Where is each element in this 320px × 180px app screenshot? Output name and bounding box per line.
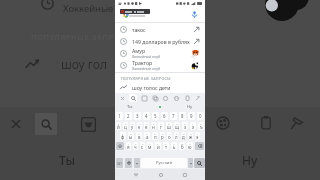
button[interactable]: 9 — [188, 112, 195, 120]
button[interactable]: 4 — [143, 112, 150, 120]
button[interactable]: 8 — [179, 112, 186, 120]
button[interactable]: Keyboard tool 3 — [162, 95, 169, 102]
button[interactable]: 6 — [160, 132, 165, 140]
button[interactable]: Ну — [175, 103, 205, 111]
button[interactable]: 8 — [174, 132, 179, 140]
button[interactable]: Stickers — [212, 112, 234, 134]
button[interactable]: 8 — [166, 122, 172, 130]
button[interactable]: Search — [129, 94, 137, 102]
staticText: Хоккейный клуб — [132, 54, 161, 59]
staticText: Трактор — [132, 59, 153, 66]
button[interactable]: 4 — [147, 142, 153, 150]
button[interactable]: 3 — [134, 112, 141, 120]
button[interactable]: 7 — [171, 142, 177, 150]
button[interactable]: 1 — [190, 122, 196, 130]
button[interactable]: Voice search — [190, 10, 199, 19]
staticText: 8 — [176, 132, 178, 135]
button[interactable]: 6 — [163, 142, 169, 150]
button[interactable]: Keyboard tool 4 — [173, 95, 180, 102]
button[interactable]: Backspace — [195, 142, 204, 150]
button[interactable]: такос — [115, 23, 205, 35]
button[interactable]: 149 долларов в рублях — [115, 35, 205, 47]
button[interactable]: Emoji — [125, 158, 132, 168]
button[interactable]: 2 — [133, 142, 138, 150]
button[interactable]: 7 — [167, 132, 172, 140]
staticText: Хоккейный клуб — [132, 66, 161, 71]
button[interactable]: 9 — [174, 122, 180, 130]
button[interactable]: 4 — [137, 122, 142, 130]
staticText: 2 — [130, 132, 132, 135]
button[interactable]: Pin — [286, 112, 308, 134]
staticText: Русский — [156, 160, 173, 166]
button[interactable]: 3 — [140, 142, 145, 150]
button[interactable]: Comma — [134, 158, 140, 168]
button[interactable]: Period — [188, 158, 193, 168]
staticText: 5 — [157, 142, 159, 145]
button[interactable] — [145, 103, 175, 111]
button[interactable]: Close — [5, 113, 27, 135]
button[interactable]: 9 — [187, 142, 193, 150]
button[interactable]: 8 — [179, 142, 185, 150]
button[interactable]: 6 — [161, 112, 168, 120]
button[interactable]: Back — [131, 170, 140, 179]
button[interactable]: Space — [141, 158, 187, 168]
button[interactable]: 3 — [136, 132, 142, 140]
staticText: т — [165, 144, 168, 150]
button[interactable]: Keyboard tool 5 — [184, 95, 191, 102]
button[interactable]: 6 — [151, 122, 156, 130]
button[interactable]: Search — [35, 113, 57, 135]
button[interactable]: Search — [194, 158, 205, 168]
button[interactable]: 9 — [181, 132, 186, 140]
button[interactable]: Market — [77, 113, 99, 135]
button[interactable]: 1 — [116, 112, 123, 120]
button[interactable]: 1 — [195, 132, 200, 140]
staticText: 2 — [200, 122, 202, 125]
staticText: 3 — [132, 122, 134, 125]
button[interactable]: 7 — [158, 122, 164, 130]
button[interactable]: 2 — [198, 122, 204, 130]
staticText: щ — [175, 124, 179, 130]
button[interactable]: 5 — [152, 132, 158, 140]
button[interactable]: 2 — [128, 132, 134, 140]
button[interactable]: 7 — [170, 112, 177, 120]
button[interactable]: Shift — [116, 142, 124, 150]
button[interactable]: 1 — [116, 122, 121, 130]
staticText: 5 — [154, 132, 156, 135]
staticText: Ну — [242, 152, 258, 168]
button[interactable]: 0 — [188, 132, 193, 140]
staticText: 6 — [153, 122, 155, 125]
button[interactable]: Keyboard tool 6 — [194, 95, 201, 102]
staticText: ж — [189, 134, 193, 140]
button[interactable]: Амур — [115, 47, 205, 59]
button[interactable]: 1 — [126, 142, 131, 150]
button[interactable]: Clipboard — [255, 112, 277, 134]
button[interactable]: 4 — [144, 132, 150, 140]
button[interactable]: Close toolbar — [119, 95, 126, 102]
staticText: ПОПУЛЯРНЫЕ ЗАПРОСЫ — [31, 32, 133, 42]
button[interactable]: 3 — [130, 122, 135, 130]
button[interactable]: 0 — [182, 122, 188, 130]
button[interactable]: 2 — [125, 112, 132, 120]
button[interactable]: 1 — [120, 132, 126, 140]
button[interactable]: Keyboard tool 2 — [152, 95, 159, 102]
staticText: 7 — [160, 122, 162, 125]
button[interactable]: 5 — [152, 112, 159, 120]
button[interactable]: Keyboard tool 1 — [141, 95, 148, 102]
button[interactable]: шоу голос дети — [115, 81, 205, 93]
button[interactable]: Symbols — [116, 158, 123, 168]
button[interactable]: Ты — [115, 103, 145, 111]
button[interactable]: Recents — [180, 170, 189, 179]
button[interactable]: Home — [156, 170, 165, 179]
button[interactable]: 5 — [155, 142, 161, 150]
staticText: 8 — [181, 113, 184, 119]
staticText: 1 — [197, 132, 199, 135]
staticText: л — [175, 134, 178, 140]
button[interactable]: 0 — [197, 112, 204, 120]
button[interactable]: 5 — [144, 122, 149, 130]
staticText: ь — [173, 144, 176, 150]
staticText: 4 — [139, 122, 141, 125]
button[interactable]: 2 — [123, 122, 128, 130]
staticText: х — [192, 124, 195, 130]
staticText: у — [131, 124, 134, 130]
button[interactable]: Трактор — [115, 59, 205, 71]
